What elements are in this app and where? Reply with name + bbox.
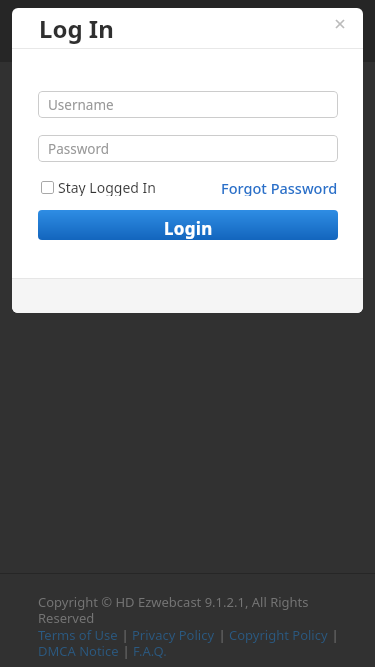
button[interactable]: Terms of Use [38,626,118,644]
staticText: | [119,642,133,660]
button[interactable]: Stay Logged In [41,178,156,196]
button[interactable]: Copyright Policy [229,626,328,644]
staticText: Reserved [38,609,95,627]
staticText: Login [164,217,213,240]
staticText: | [328,626,339,644]
staticText: Log In [39,12,114,45]
staticText: | [118,626,132,644]
staticText: Stay Logged In [58,178,156,196]
button[interactable]: Forgot Password [221,178,338,196]
button[interactable]: Username [38,91,338,118]
button[interactable]: Password [38,135,338,162]
staticText: Copyright © HD Ezwebcast 9.1.2.1, All Ri… [38,593,309,611]
staticText: Password [48,140,110,158]
button[interactable] [324,8,356,40]
button[interactable]: Privacy Policy [132,626,215,644]
staticText: Username [48,96,114,114]
button[interactable]: DMCA Notice [38,642,119,660]
button[interactable]: F.A.Q. [133,642,167,660]
button[interactable]: Login [38,210,338,240]
staticText: | [215,626,229,644]
